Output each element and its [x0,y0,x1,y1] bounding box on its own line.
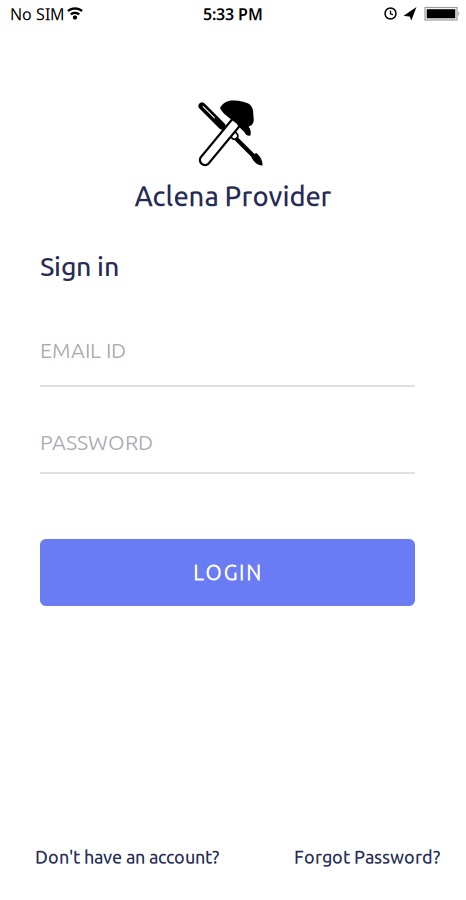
staticText: Sign in [40,251,119,281]
staticText: 5:33 PM [203,3,263,25]
button[interactable]: EMAIL ID [40,335,415,387]
staticText: Aclena Provider [134,181,331,211]
staticText: LOGIN [193,560,262,584]
button[interactable]: LOGIN [40,539,415,606]
staticText: EMAIL ID [40,338,126,362]
button[interactable]: Forgot Password? [294,847,440,867]
staticText: PASSWORD [40,430,153,454]
staticText: Don't have an account? [35,847,219,867]
button[interactable]: Don't have an account? [35,847,219,867]
button[interactable]: PASSWORD [40,427,415,474]
staticText: Forgot Password? [294,847,440,867]
staticText: No SIM [10,3,65,25]
